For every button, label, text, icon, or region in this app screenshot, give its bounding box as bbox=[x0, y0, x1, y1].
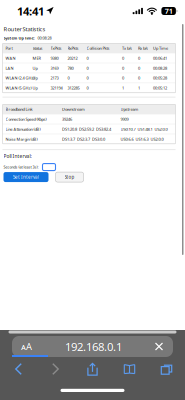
staticText: WAN bbox=[5, 55, 15, 61]
staticText: Upstream bbox=[120, 106, 138, 112]
staticText: LAN bbox=[5, 65, 13, 71]
staticText: 2173 bbox=[50, 75, 58, 81]
button[interactable]: Forward bbox=[37, 360, 74, 378]
staticText: Stop bbox=[64, 174, 74, 180]
staticText: 780 bbox=[67, 65, 73, 71]
staticText: 00:06:41 bbox=[153, 55, 167, 61]
staticText: MER bbox=[32, 55, 40, 61]
staticText: Set Interval bbox=[13, 174, 39, 180]
staticText: ᴀA bbox=[21, 340, 32, 353]
staticText: Port bbox=[5, 45, 12, 51]
button[interactable]: Stop bbox=[55, 172, 83, 182]
staticText: 0 bbox=[86, 75, 88, 81]
staticText: Up bbox=[32, 85, 37, 91]
staticText: 9380 bbox=[50, 55, 58, 61]
staticText: Line Attenuation (dB) bbox=[5, 126, 40, 132]
staticText: 00:08:28 bbox=[37, 35, 51, 41]
staticText: 1 bbox=[122, 85, 124, 91]
staticText: Tx b/s bbox=[122, 45, 132, 51]
staticText: DS1:20.8 DS2:59.2 DS3:82.4 bbox=[62, 126, 111, 132]
staticText: 14:41 bbox=[17, 3, 44, 19]
staticText: System Up Time: bbox=[3, 35, 34, 41]
staticText: 00:05:12 bbox=[153, 85, 167, 91]
staticText: WLAN (2.4 GHz) bbox=[5, 75, 34, 81]
staticText: 0 bbox=[86, 85, 88, 91]
staticText: 0 bbox=[122, 75, 124, 81]
staticText: Status bbox=[32, 45, 42, 51]
staticText: 0 bbox=[86, 65, 88, 71]
staticText: 3169 bbox=[50, 65, 58, 71]
staticText: 00:05:28 bbox=[153, 75, 167, 81]
staticText: 0 bbox=[138, 55, 140, 61]
staticText: US0:6.6 US1:6.3 US2:0.0 bbox=[120, 136, 163, 142]
staticText: 00:08:28 bbox=[153, 65, 167, 71]
staticText: Seconds (at least 3s): bbox=[3, 164, 38, 170]
button[interactable]: Bookmarks bbox=[111, 360, 148, 378]
staticText: 0 bbox=[122, 65, 124, 71]
button[interactable] bbox=[42, 164, 55, 171]
staticText: Poll Interval: bbox=[3, 153, 31, 159]
staticText: Up bbox=[32, 65, 37, 71]
staticText: 71 bbox=[165, 6, 173, 16]
button[interactable]: Tabs bbox=[148, 360, 185, 378]
button[interactable]: ᴀA bbox=[12, 336, 173, 357]
staticText: Downstream bbox=[62, 106, 85, 112]
staticText: 0 bbox=[138, 65, 140, 71]
staticText: Noise Margin (dB) bbox=[5, 136, 37, 142]
staticText: Router Statistics bbox=[3, 25, 45, 33]
staticText: Up bbox=[32, 75, 37, 81]
staticText: Up Time bbox=[153, 45, 168, 51]
staticText: 312285 bbox=[67, 85, 79, 91]
staticText: 0 bbox=[138, 75, 140, 81]
staticText: 20212 bbox=[67, 55, 77, 61]
staticText: Broadband Link bbox=[5, 106, 32, 112]
staticText: Rx b/s bbox=[138, 45, 148, 51]
staticText: TxPkts bbox=[50, 45, 61, 51]
staticText: Collision Pkts bbox=[86, 45, 109, 51]
staticText: 321194 bbox=[50, 85, 62, 91]
staticText: 0 bbox=[122, 55, 124, 61]
staticText: DS1:3.7 DS2:3.7 DS3:0.0 bbox=[62, 136, 105, 142]
button[interactable]: Back bbox=[0, 360, 37, 378]
staticText: 9909 bbox=[120, 116, 128, 122]
button[interactable]: Set Interval bbox=[3, 172, 48, 182]
staticText: US0:10.7 US1:48.1 US2:0.0 bbox=[120, 126, 167, 132]
staticText: 39246 bbox=[62, 116, 72, 122]
staticText: 0 bbox=[67, 75, 69, 81]
staticText: 192.168.0.1 bbox=[65, 339, 122, 354]
staticText: Connection Speed (Kbps) bbox=[5, 116, 46, 122]
staticText: 1 bbox=[138, 85, 140, 91]
staticText: WLAN (5 GHz) bbox=[5, 85, 31, 91]
button[interactable]: Share bbox=[74, 360, 111, 378]
staticText: RxPkts bbox=[67, 45, 78, 51]
staticText: 0 bbox=[86, 55, 88, 61]
